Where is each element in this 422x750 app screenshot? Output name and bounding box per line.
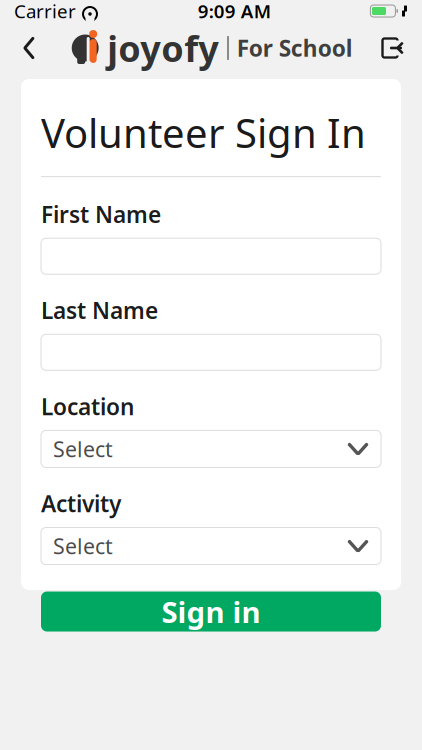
button[interactable]: Sign out	[370, 25, 416, 71]
staticText: Sign in	[161, 592, 260, 631]
staticText: Location	[41, 391, 134, 421]
button[interactable]: Text field	[41, 334, 381, 370]
staticText: For School	[237, 33, 353, 63]
staticText: Last Name	[41, 295, 158, 325]
staticText: First Name	[41, 199, 161, 229]
button[interactable]: Sign in	[41, 591, 381, 631]
button[interactable]: Select	[41, 430, 381, 467]
staticText: Activity	[41, 488, 121, 518]
button[interactable]: Text field	[41, 238, 381, 274]
staticText: 9:09 AM	[198, 0, 271, 23]
staticText: joyofy	[107, 24, 219, 72]
staticText: Carrier	[14, 0, 76, 23]
staticText: Select	[53, 435, 113, 463]
staticText: Select	[53, 532, 113, 560]
staticText: Volunteer Sign In	[41, 106, 366, 159]
button[interactable]: Select	[41, 527, 381, 564]
button[interactable]: Back	[6, 25, 52, 71]
